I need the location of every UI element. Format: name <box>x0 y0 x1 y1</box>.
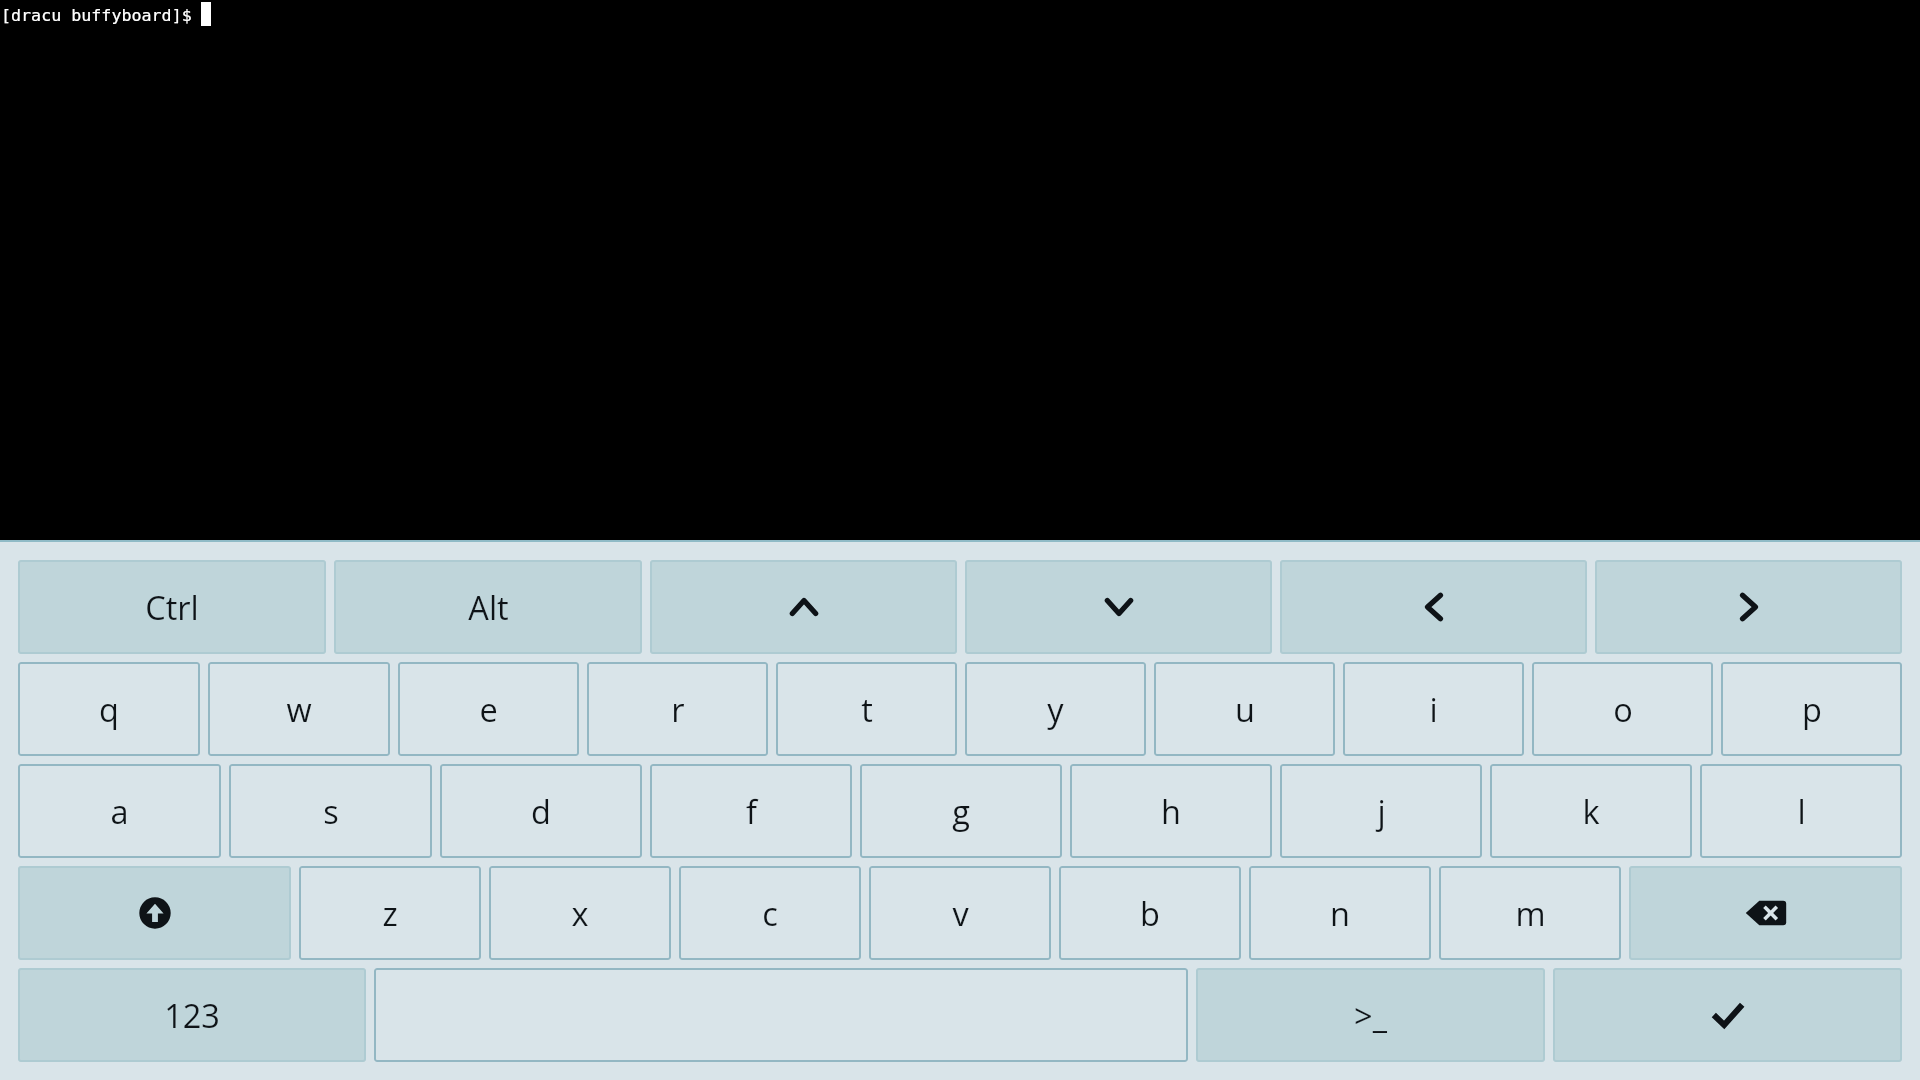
staticText: q <box>99 687 119 731</box>
button[interactable]: 123 <box>18 968 366 1062</box>
button[interactable]: r <box>587 662 768 756</box>
staticText: g <box>952 789 970 833</box>
button[interactable]: e <box>398 662 579 756</box>
button[interactable]: q <box>18 662 200 756</box>
staticText: z <box>382 891 398 935</box>
staticText: w <box>286 687 312 731</box>
button[interactable]: Shift <box>18 866 291 960</box>
button[interactable]: a <box>18 764 221 858</box>
button[interactable]: v <box>869 866 1051 960</box>
button[interactable]: Up <box>650 560 957 654</box>
button[interactable]: s <box>229 764 432 858</box>
button[interactable]: t <box>776 662 957 756</box>
staticText: m <box>1515 891 1546 935</box>
staticText: x <box>571 891 589 935</box>
staticText: h <box>1161 789 1181 833</box>
staticText: i <box>1429 687 1438 731</box>
staticText: s <box>323 789 339 833</box>
staticText: Ctrl <box>145 585 199 629</box>
staticText: l <box>1797 789 1806 833</box>
staticText: j <box>1377 789 1386 833</box>
button[interactable]: x <box>489 866 671 960</box>
button[interactable]: >_ <box>1196 968 1545 1062</box>
button[interactable]: j <box>1280 764 1482 858</box>
staticText: k <box>1582 789 1600 833</box>
button[interactable]: y <box>965 662 1146 756</box>
staticText: d <box>531 789 551 833</box>
staticText: u <box>1235 687 1255 731</box>
staticText: f <box>746 789 757 833</box>
button[interactable]: p <box>1721 662 1902 756</box>
button[interactable]: z <box>299 866 481 960</box>
button[interactable]: Right <box>1595 560 1902 654</box>
button[interactable]: i <box>1343 662 1524 756</box>
button[interactable]: l <box>1700 764 1902 858</box>
button[interactable]: o <box>1532 662 1713 756</box>
staticText: >_ <box>1354 993 1387 1037</box>
button[interactable]: d <box>440 764 642 858</box>
button[interactable]: Enter <box>1553 968 1902 1062</box>
staticText: Alt <box>468 585 509 629</box>
button[interactable]: Alt <box>334 560 642 654</box>
button[interactable]: g <box>860 764 1062 858</box>
staticText: t <box>861 687 873 731</box>
button[interactable]: Left <box>1280 560 1587 654</box>
staticText: b <box>1140 891 1160 935</box>
button[interactable]: w <box>208 662 390 756</box>
staticText: 123 <box>164 993 220 1037</box>
staticText: [dracu buffyboard]$ <box>1 6 202 25</box>
button[interactable]: m <box>1439 866 1621 960</box>
staticText: c <box>762 891 778 935</box>
button[interactable]: k <box>1490 764 1692 858</box>
button[interactable]: h <box>1070 764 1272 858</box>
staticText: y <box>1047 687 1064 731</box>
button[interactable]: Backspace <box>1629 866 1902 960</box>
staticText: p <box>1802 687 1822 731</box>
staticText: n <box>1330 891 1350 935</box>
button[interactable]: f <box>650 764 852 858</box>
button[interactable]: Ctrl <box>18 560 326 654</box>
button[interactable]: Space <box>374 968 1188 1062</box>
button[interactable]: c <box>679 866 861 960</box>
button[interactable]: u <box>1154 662 1335 756</box>
staticText: v <box>952 891 969 935</box>
staticText: r <box>671 687 685 731</box>
staticText: a <box>110 789 129 833</box>
button[interactable]: b <box>1059 866 1241 960</box>
button[interactable]: n <box>1249 866 1431 960</box>
button[interactable]: Down <box>965 560 1272 654</box>
staticText: o <box>1613 687 1633 731</box>
staticText: e <box>479 687 498 731</box>
